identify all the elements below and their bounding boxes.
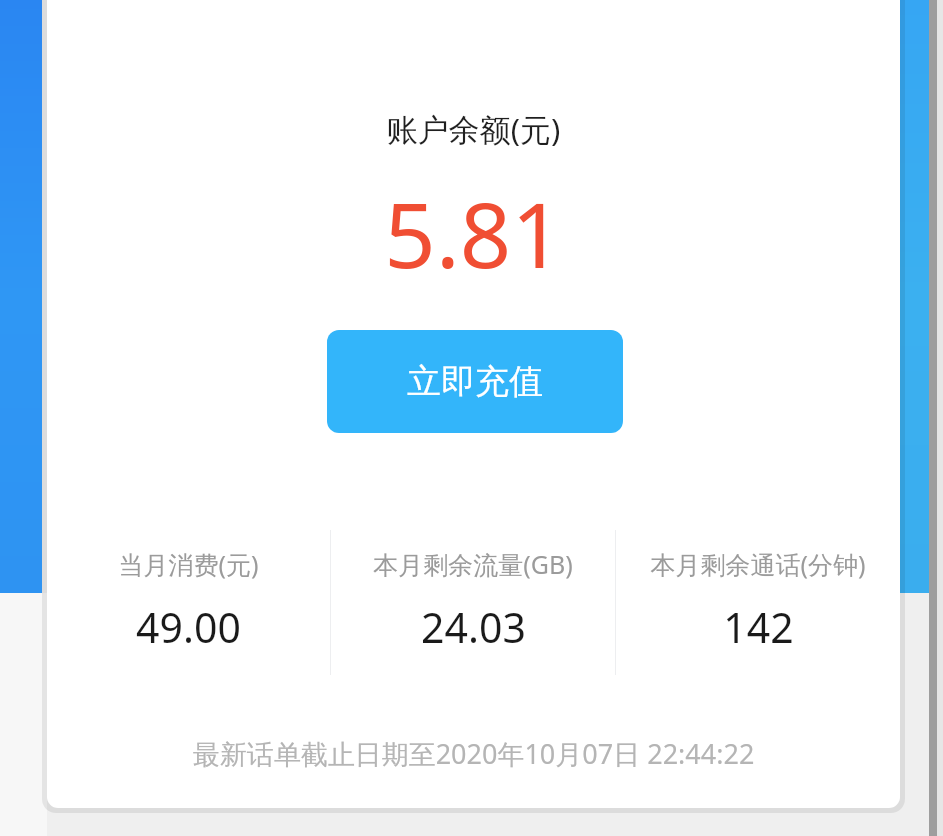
staticText: 142 xyxy=(723,599,794,655)
staticText: 本月剩余通话(分钟) xyxy=(650,547,866,581)
staticText: 24.03 xyxy=(421,599,526,655)
button[interactable]: 当月消费(元) xyxy=(47,530,330,675)
staticText: 账户余额(元) xyxy=(47,108,900,150)
staticText: 立即充值 xyxy=(407,360,543,403)
button[interactable]: 本月剩余流量(GB) xyxy=(331,530,615,675)
staticText: 5.81 xyxy=(47,172,900,295)
staticText: 当月消费(元) xyxy=(118,547,259,581)
staticText: 最新话单截止日期至2020年10月07日 22:44:22 xyxy=(47,735,900,772)
staticText: 49.00 xyxy=(136,599,241,655)
staticText: 本月剩余流量(GB) xyxy=(373,547,573,581)
button[interactable]: 立即充值 xyxy=(327,330,623,433)
button[interactable]: 本月剩余通话(分钟) xyxy=(616,530,900,675)
